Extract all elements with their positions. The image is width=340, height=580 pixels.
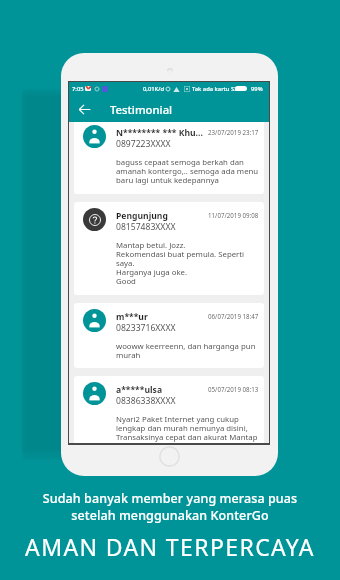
- button[interactable]: a*****ulsa: [74, 376, 264, 443]
- staticText: Sudah banyak member yang merasa puas set…: [0, 490, 340, 524]
- staticText: 08233716XXXX: [116, 322, 176, 334]
- staticText: wooww keerreenn, dan harganga pun murah: [116, 341, 256, 361]
- staticText: AMAN DAN TERPERCAYA: [0, 531, 340, 562]
- staticText: 23/07/2019 23:17: [208, 128, 259, 136]
- staticText: N******** *** Khu...: [116, 127, 203, 139]
- staticText: Nyari2 Paket Internet yang cukup lengkap…: [116, 414, 258, 443]
- button[interactable]: m***ur: [74, 303, 264, 368]
- staticText: 7:05: [72, 85, 84, 93]
- staticText: Testimonial: [110, 102, 173, 117]
- staticText: 0,01K/d: [143, 85, 165, 93]
- staticText: Pengunjung: [116, 210, 168, 222]
- staticText: a*****ulsa: [116, 384, 163, 396]
- button[interactable]: Back: [74, 99, 94, 119]
- staticText: 08157483XXXX: [116, 221, 176, 233]
- staticText: baguss cepaat semoga berkah dan amanah k…: [116, 157, 259, 186]
- staticText: 06/07/2019 18:47: [208, 312, 259, 320]
- staticText: Tak ada kartu SIM: [192, 85, 242, 93]
- button[interactable]: Pengunjung: [74, 202, 264, 295]
- button[interactable]: N******** *** Khu...: [74, 119, 264, 194]
- staticText: m***ur: [116, 311, 148, 323]
- staticText: 0897223XXXX: [116, 138, 171, 150]
- staticText: 05/07/2019 08:13: [208, 385, 259, 393]
- staticText: 99%: [251, 85, 263, 93]
- staticText: 08386338XXXX: [116, 395, 176, 407]
- staticText: 11/07/2019 09:08: [208, 211, 259, 219]
- staticText: Mantap betul. Jozz. Rekomendasi buat pem…: [116, 240, 245, 287]
